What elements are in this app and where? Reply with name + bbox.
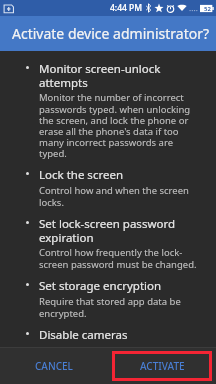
button[interactable]: Lock the screen: [0, 164, 216, 213]
staticText: Monitor screen-unlock attempts: [39, 61, 202, 90]
staticText: Disable cameras: [39, 327, 128, 343]
staticText: Activate device administrator?: [12, 24, 210, 43]
staticText: Set lock-screen password expiration: [39, 216, 202, 245]
staticText: CANCEL: [35, 359, 73, 373]
button[interactable]: Monitor screen-unlock attempts: [0, 58, 216, 164]
staticText: Monitor the number of incorrect password…: [39, 91, 202, 160]
button[interactable]: ACTIVATE: [112, 351, 212, 381]
staticText: Control how frequently the lock-screen p…: [39, 246, 202, 271]
staticText: Lock the screen: [39, 167, 123, 183]
staticText: ACTIVATE: [140, 359, 185, 373]
staticText: Require that stored app data be encrypte…: [39, 295, 202, 320]
button[interactable]: Set lock-screen password expiration: [0, 213, 216, 275]
staticText: 4:44 PM: [110, 2, 143, 14]
staticText: Control how and when the screen locks.: [39, 184, 202, 209]
button[interactable]: Disable cameras: [0, 324, 216, 347]
staticText: 52: [204, 5, 211, 13]
button[interactable]: CANCEL: [0, 348, 108, 384]
staticText: Set storage encryption: [39, 278, 162, 294]
button[interactable]: Set storage encryption: [0, 275, 216, 324]
